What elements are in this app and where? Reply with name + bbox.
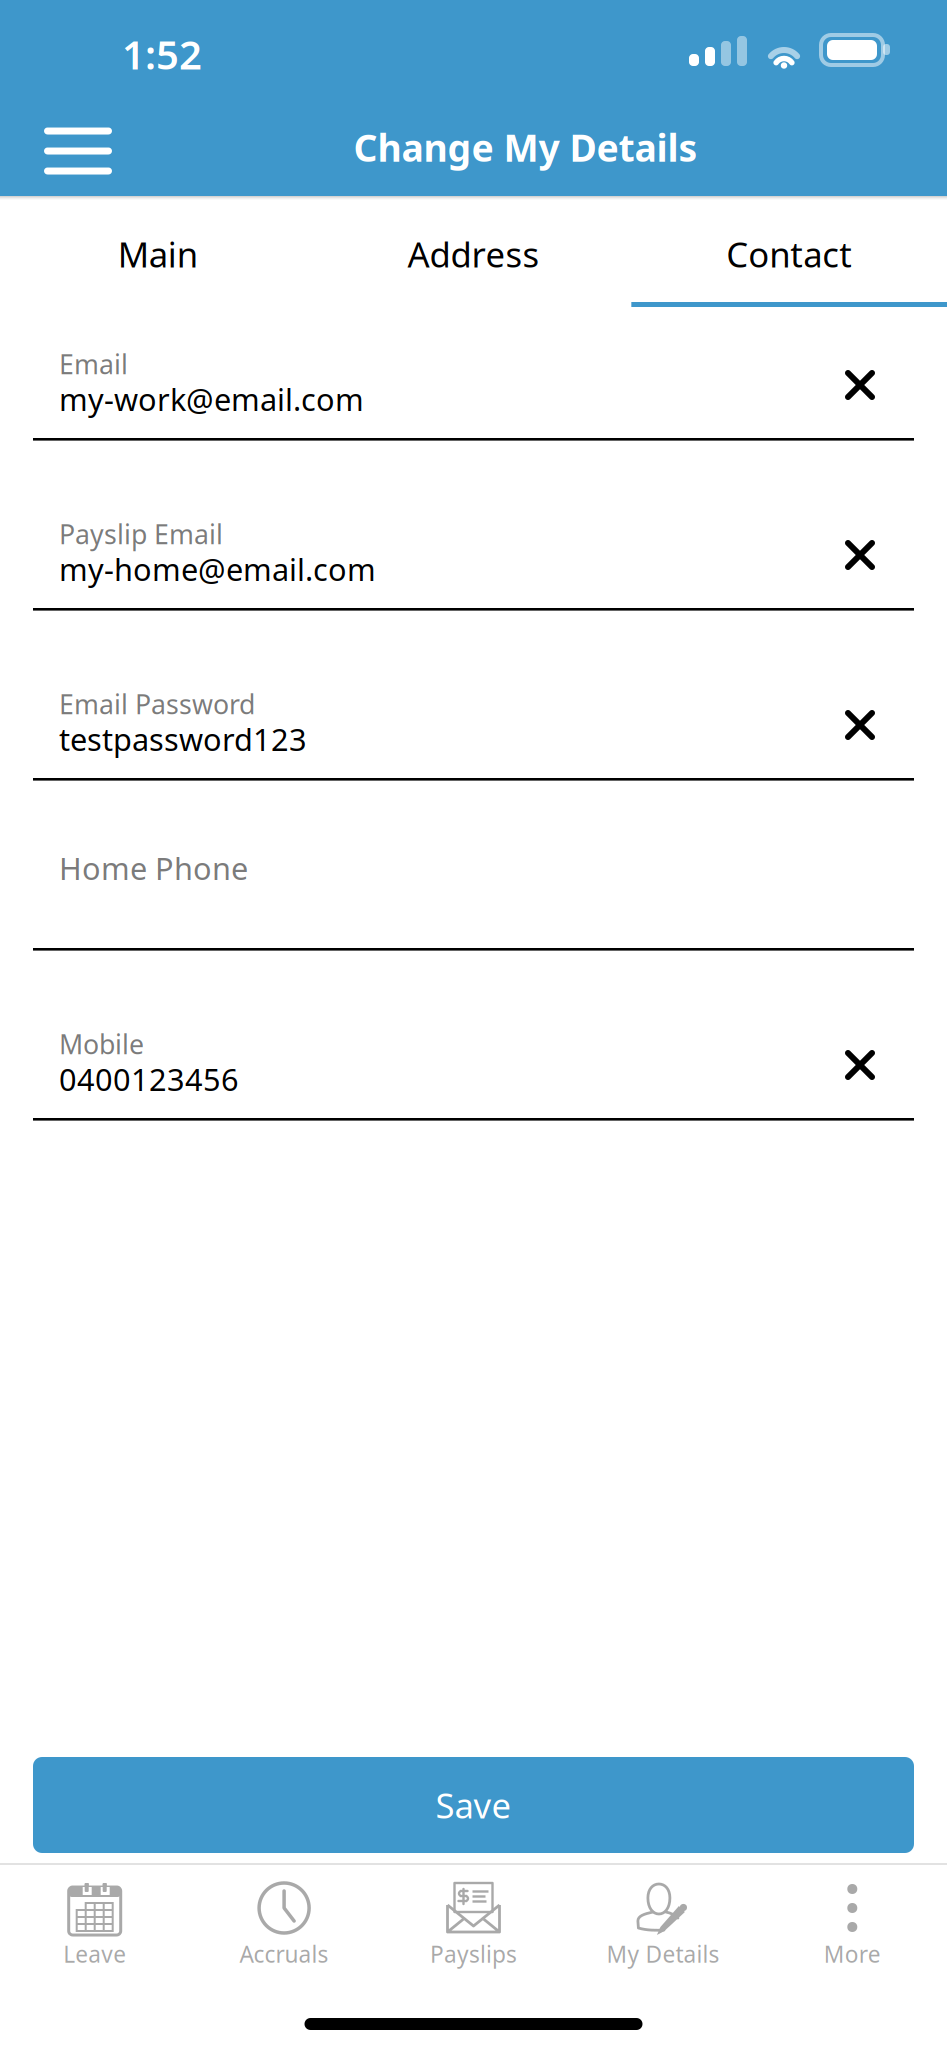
- button[interactable]: Main: [0, 200, 316, 308]
- staticText: Leave: [63, 1939, 126, 1969]
- staticText: Email: [59, 346, 128, 382]
- staticText: Accruals: [240, 1939, 329, 1969]
- staticText: Payslips: [430, 1939, 517, 1969]
- staticText: testpassword123: [59, 719, 307, 759]
- staticText: More: [824, 1939, 881, 1969]
- button[interactable]: Accruals: [189, 1863, 379, 1994]
- staticText: my-home@email.com: [59, 549, 376, 589]
- button[interactable]: More: [758, 1863, 947, 1994]
- staticText: 0400123456: [59, 1059, 239, 1099]
- staticText: My Details: [606, 1939, 719, 1969]
- button[interactable]: Menu: [22, 103, 134, 198]
- staticText: Mobile: [59, 1026, 144, 1062]
- staticText: Save: [435, 1782, 511, 1828]
- staticText: my-work@email.com: [59, 379, 364, 419]
- staticText: 1:52: [122, 27, 202, 81]
- button[interactable]: Clear Email: [825, 350, 895, 420]
- button[interactable]: Clear Payslip Email: [825, 520, 895, 590]
- button[interactable]: Save: [33, 1757, 914, 1853]
- staticText: Main: [118, 231, 198, 277]
- staticText: Payslip Email: [59, 516, 223, 552]
- button[interactable]: Clear Mobile: [825, 1030, 895, 1100]
- staticText: Home Phone: [59, 848, 248, 888]
- staticText: Address: [407, 231, 539, 277]
- button[interactable]: Clear Email Password: [825, 690, 895, 760]
- button[interactable]: Payslips: [379, 1863, 568, 1994]
- staticText: Contact: [726, 231, 852, 277]
- button[interactable]: Contact: [631, 200, 947, 308]
- staticText: Change My Details: [353, 122, 697, 172]
- button[interactable]: Address: [316, 200, 631, 308]
- button[interactable]: My Details: [568, 1863, 758, 1994]
- staticText: Email Password: [59, 686, 255, 722]
- button[interactable]: Leave: [0, 1863, 189, 1994]
